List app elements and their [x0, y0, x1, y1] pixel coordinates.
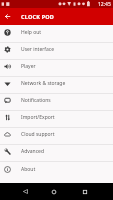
staticText: Player — [21, 63, 36, 70]
button[interactable]: Help out — [0, 26, 113, 43]
button[interactable]: Cloud support — [0, 128, 113, 145]
button[interactable]: Advanced — [0, 145, 113, 162]
staticText: 12:45 — [98, 1, 111, 8]
staticText: Notifications — [21, 97, 51, 104]
staticText: Advanced — [21, 148, 45, 155]
button[interactable]: Back — [0, 9, 14, 23]
staticText: Help out — [21, 29, 42, 36]
button[interactable]: Back — [13, 183, 37, 200]
button[interactable]: Recents — [73, 183, 97, 200]
staticText: Cloud support — [21, 131, 55, 138]
button[interactable]: Home — [42, 183, 66, 200]
staticText: CLOCK POD — [21, 13, 55, 20]
staticText: User interface — [21, 46, 55, 53]
button[interactable]: Player — [0, 60, 113, 77]
button[interactable]: Notifications — [0, 94, 113, 111]
button[interactable]: Import/Export — [0, 111, 113, 128]
staticText: About — [21, 166, 36, 173]
button[interactable]: User interface — [0, 43, 113, 60]
staticText: Import/Export — [21, 114, 55, 121]
staticText: Network & storage — [21, 80, 66, 87]
button[interactable]: About — [0, 162, 113, 179]
button[interactable]: Network & storage — [0, 77, 113, 94]
